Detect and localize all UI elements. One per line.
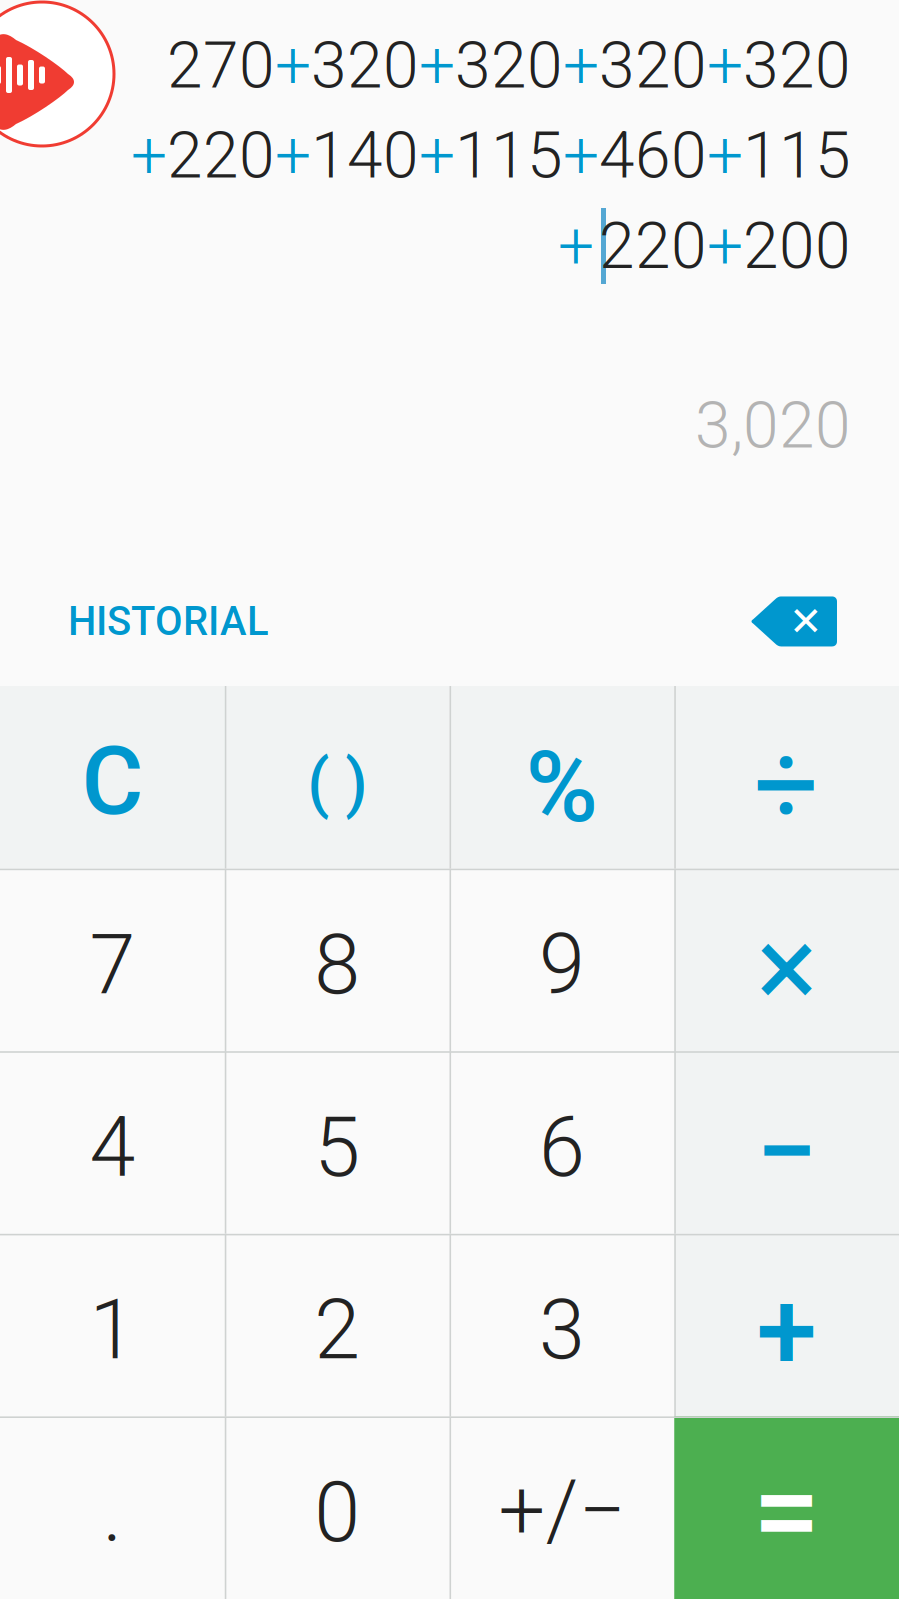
button[interactable]: ÷: [674, 686, 899, 869]
staticText: 115: [743, 118, 851, 193]
button[interactable]: HISTORIAL: [64, 584, 273, 659]
staticText: 5: [314, 1099, 360, 1196]
staticText: 7: [89, 916, 135, 1013]
staticText: 220: [599, 208, 707, 283]
staticText: +/−: [498, 1462, 625, 1559]
staticText: %: [525, 729, 598, 845]
button[interactable]: 0: [225, 1416, 450, 1599]
staticText: 6: [539, 1099, 585, 1196]
button[interactable]: 6: [449, 1051, 674, 1234]
staticText: ✕: [789, 598, 823, 645]
staticText: .: [102, 1464, 122, 1561]
staticText: 140: [311, 118, 419, 193]
button[interactable]: Delete: [751, 594, 839, 648]
staticText: +: [131, 118, 167, 193]
staticText: −: [756, 1087, 818, 1215]
staticText: 115: [455, 118, 563, 193]
button[interactable]: ( ): [225, 686, 450, 869]
staticText: 8: [314, 916, 360, 1013]
button[interactable]: 7: [0, 869, 225, 1051]
staticText: 460: [599, 118, 707, 193]
staticText: 9: [539, 916, 585, 1013]
staticText: 200: [743, 208, 851, 283]
button[interactable]: −: [674, 1051, 899, 1234]
staticText: +: [563, 28, 599, 103]
staticText: 320: [455, 28, 563, 103]
staticText: 2: [314, 1282, 360, 1379]
staticText: 3,020: [695, 388, 851, 463]
button[interactable]: .: [0, 1416, 225, 1599]
button[interactable]: =: [674, 1416, 899, 1599]
button[interactable]: +/−: [449, 1416, 674, 1599]
staticText: ÷: [754, 718, 820, 852]
button[interactable]: C: [0, 686, 225, 869]
staticText: 3: [539, 1282, 585, 1379]
staticText: +: [707, 208, 743, 283]
staticText: 320: [743, 28, 851, 103]
staticText: +: [563, 118, 599, 193]
staticText: +: [419, 28, 455, 103]
staticText: =: [753, 1441, 821, 1582]
staticText: ( ): [307, 746, 367, 821]
button[interactable]: 2: [225, 1234, 450, 1416]
staticText: +: [707, 118, 743, 193]
staticText: C: [81, 726, 143, 837]
staticText: 0: [314, 1464, 360, 1561]
staticText: +: [756, 1267, 817, 1395]
staticText: 270: [167, 28, 275, 103]
button[interactable]: 9: [449, 869, 674, 1051]
staticText: 320: [599, 28, 707, 103]
button[interactable]: %: [449, 686, 674, 869]
button[interactable]: 3: [449, 1234, 674, 1416]
staticText: +: [419, 118, 455, 193]
button[interactable]: 5: [225, 1051, 450, 1234]
staticText: +: [707, 28, 743, 103]
button[interactable]: 8: [225, 869, 450, 1051]
staticText: HISTORIAL: [68, 598, 269, 645]
staticText: ×: [756, 901, 817, 1035]
staticText: +: [275, 28, 311, 103]
button[interactable]: 4: [0, 1051, 225, 1234]
staticText: 220: [167, 118, 275, 193]
button[interactable]: Now playing: [0, 2, 114, 146]
staticText: 1: [89, 1282, 135, 1379]
staticText: +: [558, 208, 594, 283]
button[interactable]: +: [674, 1234, 899, 1416]
staticText: +: [275, 118, 311, 193]
staticText: 320: [311, 28, 419, 103]
button[interactable]: 1: [0, 1234, 225, 1416]
staticText: 4: [89, 1099, 135, 1196]
button[interactable]: ×: [674, 869, 899, 1051]
